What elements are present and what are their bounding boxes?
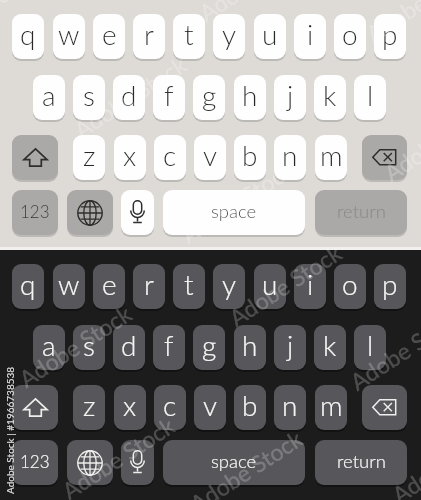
staticText: i	[307, 17, 314, 51]
button[interactable]	[67, 440, 113, 485]
staticText: Adobe Stock	[194, 0, 317, 27]
button[interactable]	[12, 135, 58, 180]
staticText: d	[121, 78, 137, 112]
button[interactable]: i	[294, 264, 326, 309]
staticText: 123	[20, 201, 50, 221]
button[interactable]	[121, 190, 154, 235]
staticText: r	[144, 17, 154, 51]
button[interactable]: z	[73, 135, 105, 180]
button[interactable]: r	[133, 14, 165, 59]
button[interactable]: j	[274, 325, 306, 370]
staticText: m	[320, 388, 343, 422]
button[interactable]: f	[153, 75, 185, 120]
button[interactable]: y	[213, 264, 245, 309]
button[interactable]: return	[315, 190, 407, 235]
button[interactable]: z	[73, 385, 105, 430]
button[interactable]: l	[354, 75, 386, 120]
button[interactable]: o	[334, 264, 366, 309]
staticText: b	[242, 388, 258, 422]
staticText: w	[58, 267, 80, 301]
button[interactable]	[362, 385, 407, 430]
button[interactable]: x	[114, 135, 146, 180]
staticText: y	[222, 17, 237, 51]
button[interactable]: k	[314, 75, 346, 120]
staticText: Adobe Stock	[176, 155, 299, 249]
button[interactable]: b	[234, 135, 266, 180]
button[interactable]: g	[193, 75, 225, 120]
button[interactable]: c	[154, 135, 186, 180]
staticText: l	[367, 328, 374, 362]
button[interactable]	[12, 385, 58, 430]
button[interactable]	[121, 440, 154, 485]
staticText: x	[123, 138, 137, 172]
staticText: h	[242, 78, 258, 112]
button[interactable]: y	[213, 14, 245, 59]
button[interactable]: u	[254, 14, 286, 59]
staticText: k	[323, 78, 337, 112]
staticText: x	[123, 388, 137, 422]
staticText: r	[144, 267, 154, 301]
staticText: Adobe Stock	[185, 424, 308, 500]
button[interactable]: o	[334, 14, 366, 59]
button[interactable]: e	[93, 264, 125, 309]
button[interactable]: h	[234, 325, 266, 370]
button[interactable]: v	[194, 135, 226, 180]
button[interactable]: g	[193, 325, 225, 370]
button[interactable]: i	[294, 14, 326, 59]
button[interactable]: a	[33, 75, 65, 120]
button[interactable]: s	[73, 325, 105, 370]
staticText: z	[83, 388, 96, 422]
button[interactable]: w	[53, 14, 85, 59]
staticText: a	[42, 328, 56, 362]
staticText: k	[323, 328, 337, 362]
button[interactable]: space	[163, 190, 305, 235]
button[interactable]: a	[33, 325, 65, 370]
button[interactable]: j	[274, 75, 306, 120]
button[interactable]: t	[173, 14, 205, 59]
staticText: space	[211, 450, 257, 472]
staticText: Adobe Stock	[0, 0, 67, 39]
button[interactable]: f	[153, 325, 185, 370]
button[interactable]: d	[113, 325, 145, 370]
button[interactable]: m	[315, 385, 347, 430]
button[interactable]: c	[154, 385, 186, 430]
button[interactable]: b	[234, 385, 266, 430]
button[interactable]: n	[274, 385, 306, 430]
button[interactable]: space	[163, 440, 305, 485]
button[interactable]: l	[354, 325, 386, 370]
button[interactable]: m	[315, 135, 347, 180]
button[interactable]: d	[113, 75, 145, 120]
staticText: s	[83, 328, 95, 362]
button[interactable]: v	[194, 385, 226, 430]
button[interactable]: r	[133, 264, 165, 309]
button[interactable]	[67, 190, 113, 235]
button[interactable]: u	[254, 264, 286, 309]
staticText: l	[367, 78, 374, 112]
staticText: p	[382, 17, 398, 51]
button[interactable]: q	[12, 14, 44, 59]
button[interactable]: k	[314, 325, 346, 370]
staticText: Adobe Stock	[379, 93, 421, 187]
staticText: j	[287, 78, 294, 112]
button[interactable]: p	[374, 264, 406, 309]
staticText: s	[83, 78, 95, 112]
staticText: u	[262, 267, 278, 301]
button[interactable]: t	[173, 264, 205, 309]
staticText: Adobe Stock	[361, 0, 421, 48]
staticText: h	[242, 328, 258, 362]
button[interactable]: q	[12, 264, 44, 309]
button[interactable]: w	[53, 264, 85, 309]
button[interactable]: return	[315, 440, 407, 485]
button[interactable]: s	[73, 75, 105, 120]
button[interactable]: x	[114, 385, 146, 430]
button[interactable]: 123	[12, 440, 58, 485]
staticText: d	[121, 328, 137, 362]
button[interactable]: n	[274, 135, 306, 180]
staticText: o	[342, 17, 358, 51]
button[interactable]: h	[234, 75, 266, 120]
button[interactable]: e	[93, 14, 125, 59]
button[interactable]: p	[374, 14, 406, 59]
button[interactable]: 123	[12, 190, 58, 235]
button[interactable]	[362, 135, 407, 180]
staticText: a	[42, 78, 56, 112]
